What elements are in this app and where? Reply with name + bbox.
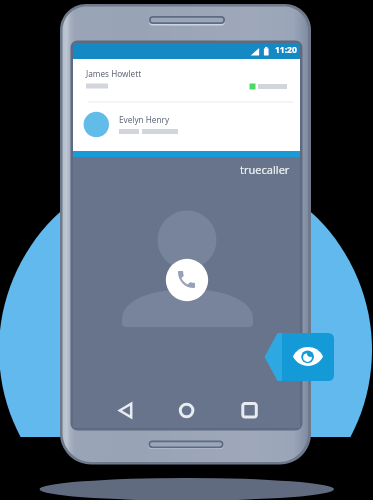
staticText: 11:20 <box>275 44 297 56</box>
button[interactable]: Caller ID preview <box>264 333 334 381</box>
staticText: James Howlett <box>86 68 142 79</box>
staticText: truecaller <box>240 162 290 177</box>
button[interactable]: Home <box>170 396 204 425</box>
button[interactable]: Back <box>108 396 143 425</box>
button[interactable]: Evelyn Henry call <box>73 102 300 151</box>
button[interactable]: James Howlett call <box>73 59 300 101</box>
staticText: Evelyn Henry <box>119 114 170 125</box>
button[interactable]: Recent apps <box>232 396 266 425</box>
button[interactable]: Answer call <box>166 258 209 301</box>
